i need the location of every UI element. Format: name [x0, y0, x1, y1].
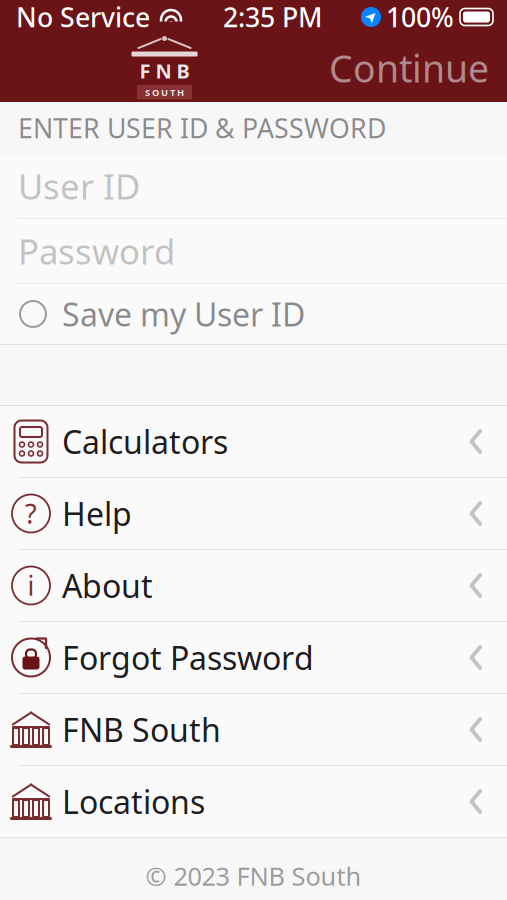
- staticText: User ID: [18, 163, 140, 209]
- staticText: Password: [18, 228, 175, 274]
- button[interactable]: User ID: [0, 154, 507, 218]
- button[interactable]: i: [0, 550, 507, 622]
- staticText: ENTER USER ID & PASSWORD: [18, 110, 386, 146]
- staticText: About: [62, 564, 153, 607]
- button[interactable]: Locations: [0, 766, 507, 837]
- staticText: S O U T H: [145, 86, 184, 98]
- staticText: Continue: [329, 43, 489, 93]
- button[interactable]: Save my User ID: [0, 284, 507, 344]
- staticText: © 2023 FNB South: [145, 859, 361, 893]
- staticText: Help: [62, 492, 132, 535]
- button[interactable]: FNB South: [0, 694, 507, 766]
- staticText: Calculators: [62, 420, 228, 463]
- staticText: ?: [25, 496, 37, 531]
- button[interactable]: Continue: [329, 43, 507, 93]
- button[interactable]: Forgot Password: [0, 622, 507, 694]
- button[interactable]: ?: [0, 478, 507, 550]
- staticText: i: [27, 568, 34, 603]
- button[interactable]: Password: [0, 219, 507, 283]
- staticText: 100%: [386, 0, 454, 35]
- staticText: F N B: [139, 57, 189, 84]
- staticText: ➤: [365, 9, 377, 25]
- staticText: No Service: [16, 0, 150, 35]
- button[interactable]: Calculators: [0, 406, 507, 478]
- staticText: FNB South: [62, 708, 221, 751]
- staticText: 2:35 PM: [223, 0, 322, 35]
- staticText: Forgot Password: [62, 636, 314, 679]
- staticText: Locations: [62, 780, 205, 823]
- staticText: Save my User ID: [62, 293, 305, 335]
